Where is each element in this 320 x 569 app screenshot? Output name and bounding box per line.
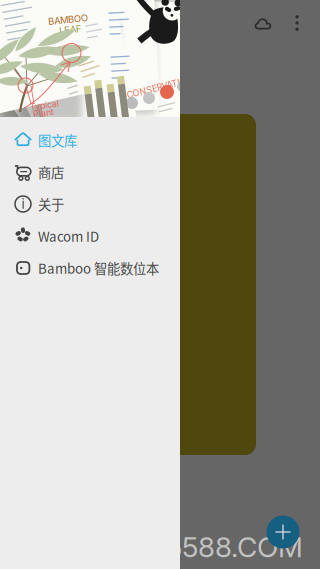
button[interactable]: i: [0, 188, 180, 220]
button[interactable]: Add: [259, 508, 307, 556]
staticText: LEAF: [59, 24, 82, 35]
staticText: CONSERVATION: [126, 82, 194, 92]
staticText: 5588.COM: [166, 530, 303, 564]
staticText: Wacom ID: [38, 226, 99, 246]
button[interactable]: Bamboo 智能数位本: [0, 252, 180, 284]
staticText: 关于: [38, 194, 64, 214]
button[interactable]: More options: [281, 3, 313, 43]
button[interactable]: Wacom ID: [0, 220, 180, 252]
button[interactable]: 图文库: [0, 124, 180, 156]
staticText: Bamboo 智能数位本: [38, 258, 159, 278]
staticText: 图文库: [38, 130, 77, 150]
button[interactable]: Cloud sync: [245, 3, 281, 43]
staticText: i: [21, 196, 24, 212]
staticText: Typical: [30, 100, 59, 110]
staticText: Plant: [33, 108, 54, 118]
button[interactable]: 商店: [0, 156, 180, 188]
staticText: 商店: [38, 162, 64, 182]
staticText: BAMBOO: [48, 14, 88, 25]
